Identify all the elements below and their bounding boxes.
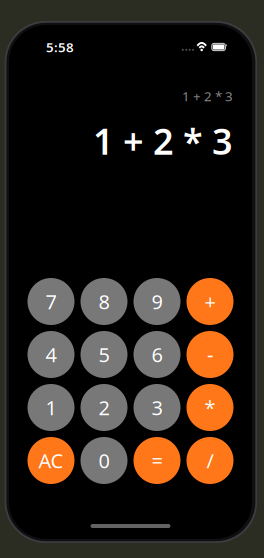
staticText: -	[207, 341, 213, 368]
staticText: =	[151, 447, 162, 474]
button[interactable]: 4	[27, 331, 74, 378]
staticText: 1	[45, 394, 56, 421]
staticText: 7	[45, 288, 56, 315]
button[interactable]: 0	[80, 437, 127, 484]
button[interactable]: -	[186, 331, 233, 378]
staticText: 5:58	[46, 38, 74, 56]
button[interactable]: 2	[80, 384, 127, 431]
staticText: 2	[98, 394, 109, 421]
button[interactable]: 8	[80, 278, 127, 325]
staticText: /	[206, 447, 213, 474]
staticText: AC	[38, 447, 63, 474]
staticText: 8	[98, 288, 109, 315]
staticText: 0	[98, 447, 109, 474]
button[interactable]: 3	[133, 384, 180, 431]
button[interactable]: 6	[133, 331, 180, 378]
staticText: 6	[151, 341, 162, 368]
staticText: 5	[98, 341, 109, 368]
staticText: 9	[151, 288, 162, 315]
staticText: 1 + 2 * 3	[93, 117, 233, 165]
staticText: *	[204, 394, 215, 421]
staticText: +	[204, 288, 215, 315]
button[interactable]: AC	[27, 437, 74, 484]
button[interactable]: 7	[27, 278, 74, 325]
button[interactable]: /	[186, 437, 233, 484]
staticText: 1 + 2 * 3	[182, 87, 233, 105]
button[interactable]: =	[133, 437, 180, 484]
button[interactable]: *	[186, 384, 233, 431]
button[interactable]: 9	[133, 278, 180, 325]
button[interactable]: +	[186, 278, 233, 325]
staticText: 3	[151, 394, 162, 421]
button[interactable]: 1	[27, 384, 74, 431]
staticText: 4	[45, 341, 56, 368]
button[interactable]: 5	[80, 331, 127, 378]
